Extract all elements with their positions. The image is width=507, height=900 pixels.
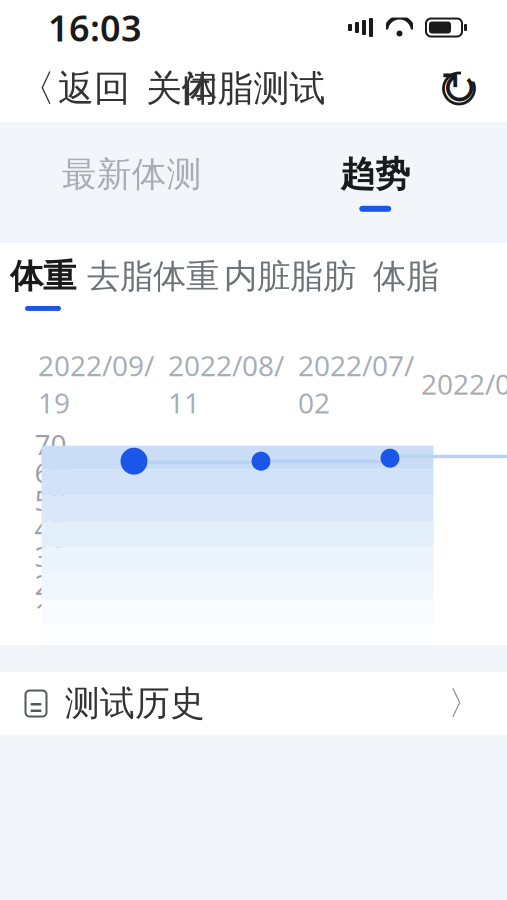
staticText: 30 xyxy=(34,538,66,575)
staticText: 〉 xyxy=(448,683,481,724)
staticText: 体脂 xyxy=(373,256,439,297)
staticText: 内脏脂肪 xyxy=(224,256,356,297)
button[interactable]: 〈 xyxy=(14,58,134,119)
staticText: 2022/06 xyxy=(421,365,507,403)
staticText: 返回 xyxy=(58,66,130,111)
staticText: 70 xyxy=(34,426,66,463)
staticText: 20 xyxy=(34,566,66,603)
staticText: 关闭 xyxy=(146,66,218,111)
staticText: 体脂测试 xyxy=(181,66,325,111)
button[interactable]: 体脂 xyxy=(356,243,456,311)
staticText: 2022/08/11 xyxy=(168,347,284,421)
staticText: 0 xyxy=(50,622,66,659)
staticText: 50 xyxy=(34,482,66,519)
button[interactable]: 趋势 xyxy=(253,141,497,224)
staticText: 〈 xyxy=(18,66,55,111)
staticText: ↻ xyxy=(440,63,478,114)
button[interactable]: 关闭 xyxy=(138,58,226,119)
staticText: 测试历史 xyxy=(65,682,205,725)
button[interactable]: 测试历史 xyxy=(0,672,507,735)
staticText: 去脂体重 xyxy=(87,256,219,297)
staticText: 趋势 xyxy=(340,153,410,196)
staticText: 60 xyxy=(34,454,66,491)
staticText: 最新体测 xyxy=(62,153,202,196)
button[interactable]: 去脂体重 xyxy=(82,243,224,311)
staticText: 体重 xyxy=(10,256,76,297)
staticText: 10 xyxy=(34,594,66,631)
staticText: 2022/09/19 xyxy=(38,347,154,421)
button[interactable]: 刷新 xyxy=(435,64,483,112)
staticText: 16:03 xyxy=(48,4,142,51)
staticText: 40 xyxy=(34,510,66,547)
staticText: 2022/07/02 xyxy=(298,347,414,421)
button[interactable]: 体重 xyxy=(4,243,82,311)
button[interactable]: 内脏脂肪 xyxy=(224,243,356,311)
button[interactable]: 最新体测 xyxy=(10,141,253,224)
